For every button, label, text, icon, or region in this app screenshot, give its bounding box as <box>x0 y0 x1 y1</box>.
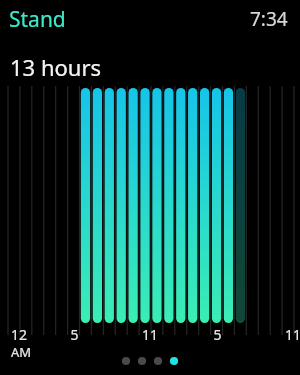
button[interactable]: Stand activity chart <box>0 0 300 375</box>
